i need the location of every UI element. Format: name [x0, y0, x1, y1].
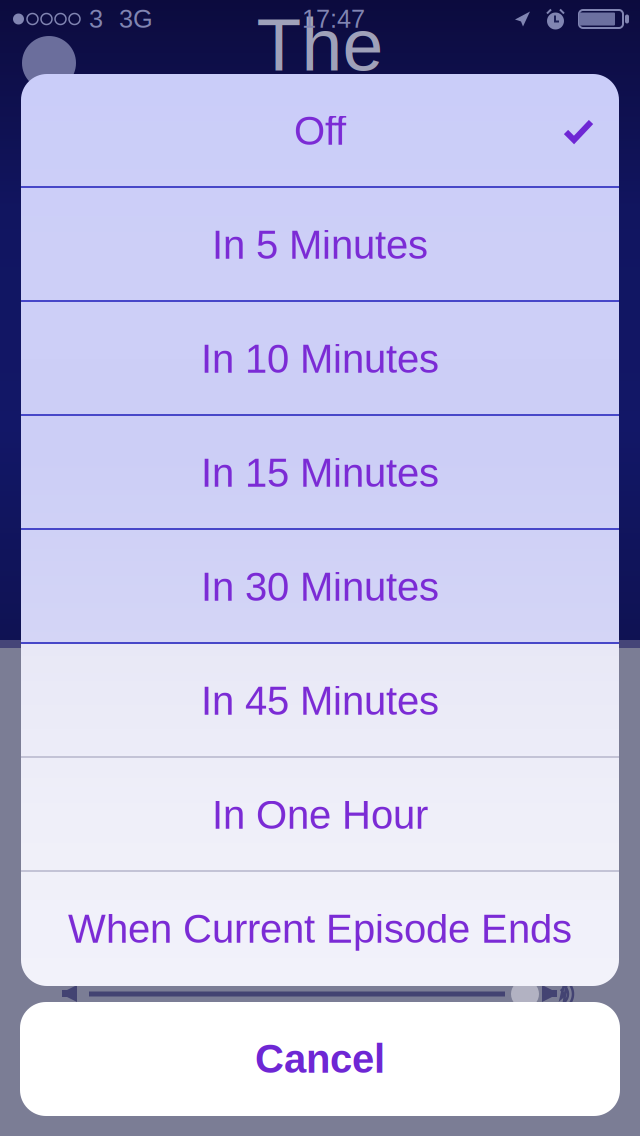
staticText: In 45 Minutes: [201, 679, 439, 723]
staticText: 3G: [119, 5, 153, 33]
staticText: In One Hour: [212, 793, 428, 837]
staticText: In 5 Minutes: [212, 223, 428, 267]
staticText: Cancel: [255, 1037, 385, 1081]
staticText: 17:47: [302, 5, 365, 33]
button[interactable]: Off: [21, 74, 619, 188]
staticText: In 10 Minutes: [201, 337, 439, 381]
staticText: The: [256, 4, 383, 86]
button[interactable]: In 5 Minutes: [21, 188, 619, 302]
button[interactable]: In One Hour: [21, 758, 619, 872]
button[interactable]: In 45 Minutes: [21, 644, 619, 758]
button[interactable]: In 30 Minutes: [21, 530, 619, 644]
button[interactable]: Cancel: [20, 1002, 620, 1116]
button[interactable]: In 10 Minutes: [21, 302, 619, 416]
button[interactable]: In 15 Minutes: [21, 416, 619, 530]
staticText: 3: [89, 5, 103, 33]
staticText: In 30 Minutes: [201, 565, 439, 609]
button[interactable]: When Current Episode Ends: [21, 872, 619, 986]
staticText: When Current Episode Ends: [68, 907, 572, 951]
staticText: In 15 Minutes: [201, 451, 439, 495]
staticText: Off: [294, 109, 346, 153]
